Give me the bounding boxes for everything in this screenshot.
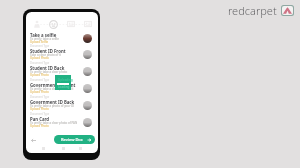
button[interactable]: Document Type <box>26 44 98 60</box>
button[interactable]: Photo thumbnail <box>83 118 92 127</box>
button[interactable]: Document Type <box>26 112 98 128</box>
button[interactable]: Back <box>29 136 38 145</box>
button[interactable]: Back <box>40 145 47 152</box>
staticText: Student ID Back <box>30 65 65 71</box>
button[interactable]: redcarpet logo <box>228 2 296 20</box>
staticText: To verify, take a photo of your ID <box>30 104 75 108</box>
button[interactable]: Step 3 <box>66 19 76 29</box>
button[interactable]: Recents <box>77 145 84 152</box>
staticText: Loading <box>58 85 70 89</box>
staticText: Take a clear photo of it <box>30 53 61 57</box>
staticText: Upload Selfie <box>30 40 49 44</box>
staticText: Document Type <box>30 44 50 48</box>
staticText: Document Type <box>30 78 50 82</box>
staticText: Upload Photo <box>30 124 49 128</box>
button[interactable]: Step 4 <box>83 19 93 29</box>
staticText: To verify, take a selfie <box>30 37 59 41</box>
button[interactable]: Document Type <box>26 95 98 111</box>
staticText: Student ID Front <box>30 48 66 54</box>
staticText: Upload Photo <box>30 90 49 94</box>
staticText: Take a selfie <box>30 32 57 38</box>
button[interactable]: Photo thumbnail <box>83 67 92 76</box>
staticText: To verify, take a clear photo of it <box>30 87 74 91</box>
staticText: Government ID Back <box>30 99 75 105</box>
button[interactable]: Step 2 <box>48 19 58 29</box>
staticText: Review Doc <box>61 137 83 142</box>
button[interactable]: Document Type <box>26 78 98 94</box>
staticText: Upload Photo <box>30 73 49 77</box>
staticText: Document Type <box>30 95 50 99</box>
staticText: redcarpet <box>228 3 277 18</box>
staticText: To verify, take a clear photo <box>30 70 68 74</box>
button[interactable]: Step 1 <box>32 19 42 29</box>
staticText: Upload Photo <box>30 56 49 60</box>
staticText: To verify, take a clear photo of PAN <box>30 121 78 125</box>
button[interactable]: Home <box>60 145 67 152</box>
button[interactable]: Photo thumbnail <box>83 34 92 43</box>
staticText: Document Type <box>30 112 50 116</box>
staticText: Uploading <box>58 78 73 82</box>
staticText: Document Type <box>30 61 50 65</box>
button[interactable]: Take a selfie <box>26 28 98 44</box>
staticText: Government ID Front <box>30 82 76 88</box>
staticText: Pan Card <box>30 116 50 122</box>
button[interactable]: Review Doc <box>54 135 95 144</box>
staticText: Upload Photo <box>30 107 49 111</box>
button[interactable]: Photo thumbnail <box>83 50 92 59</box>
button[interactable]: Photo thumbnail <box>83 101 92 110</box>
button[interactable]: Photo thumbnail <box>83 84 92 93</box>
button[interactable]: Document Type <box>26 61 98 77</box>
